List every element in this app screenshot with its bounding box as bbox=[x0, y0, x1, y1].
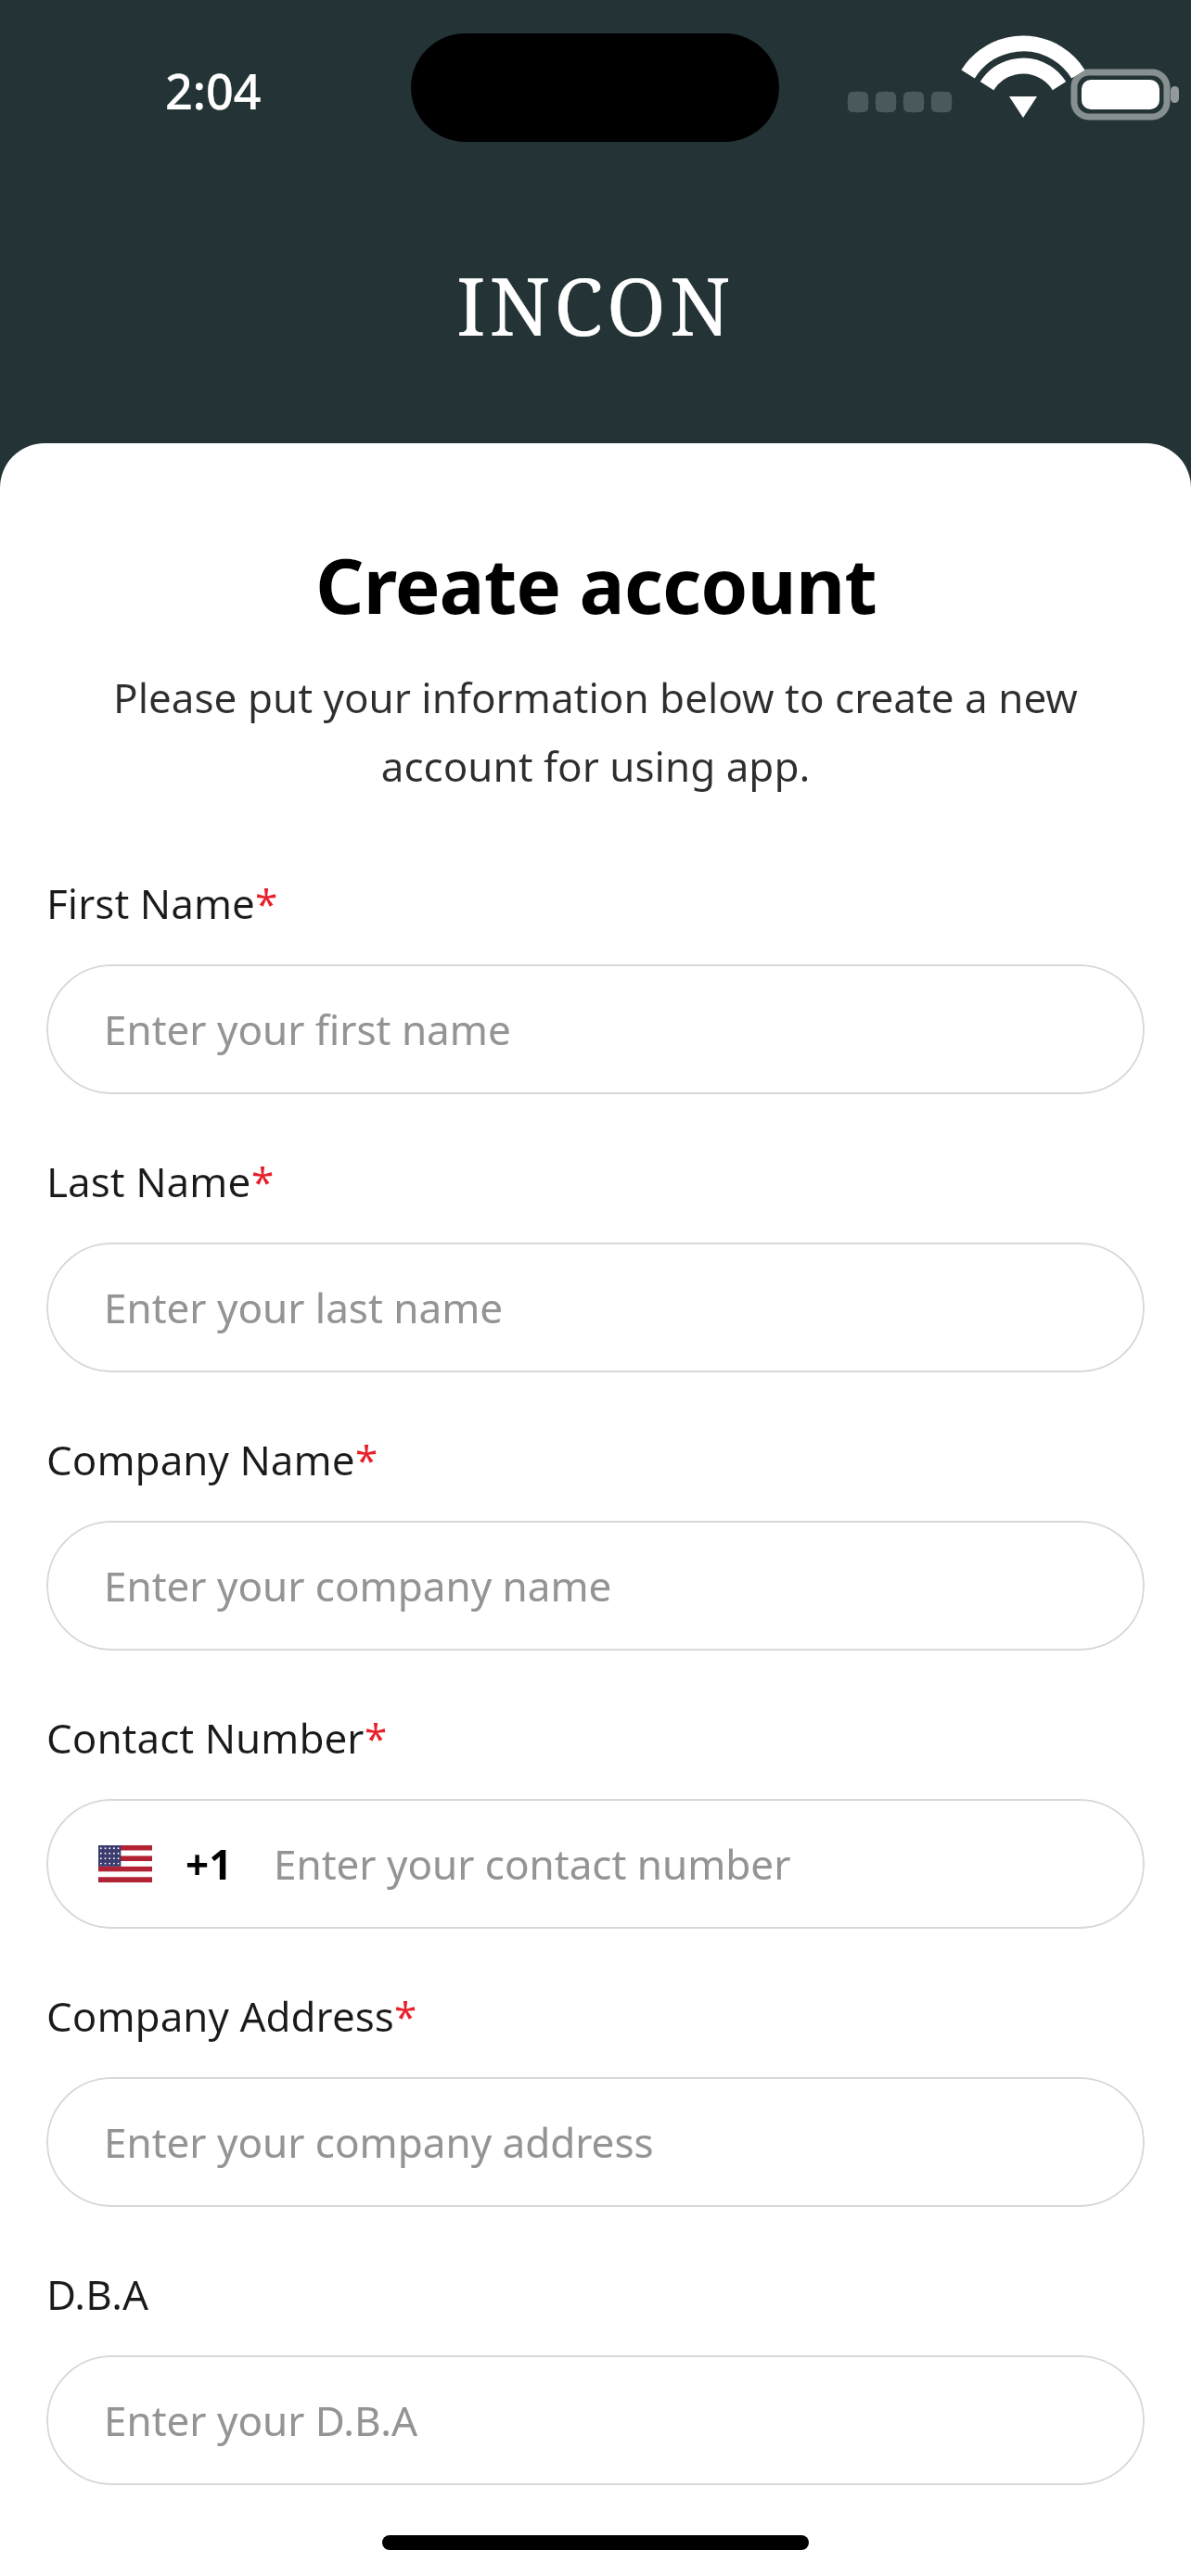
staticText: Enter your contact number bbox=[274, 1836, 791, 1892]
staticText: First Name bbox=[46, 875, 255, 931]
staticText: Enter your last name bbox=[104, 1280, 504, 1335]
staticText: Contact Number bbox=[46, 1710, 365, 1766]
staticText: D.B.A bbox=[46, 2266, 149, 2322]
staticText: Please put your information below to cre… bbox=[85, 670, 1106, 794]
staticText: * bbox=[251, 1154, 275, 1209]
staticText: Enter your company name bbox=[104, 1558, 612, 1613]
staticText: Enter your first name bbox=[104, 1001, 511, 1057]
staticText: * bbox=[394, 1988, 417, 2044]
button[interactable]: Enter your first name bbox=[46, 964, 1145, 1094]
other: United States bbox=[98, 1845, 152, 1882]
button[interactable]: Enter your D.B.A bbox=[46, 2355, 1145, 2485]
staticText: * bbox=[255, 875, 278, 931]
staticText: +1 bbox=[186, 1836, 233, 1892]
button[interactable]: United States bbox=[46, 1799, 1145, 1929]
staticText: * bbox=[355, 1432, 378, 1487]
staticText: 2:04 bbox=[165, 57, 262, 123]
staticText: Create account bbox=[315, 532, 877, 636]
button[interactable]: Enter your last name bbox=[46, 1243, 1145, 1372]
staticText: Company Address bbox=[46, 1988, 394, 2044]
staticText: Enter your company address bbox=[104, 2114, 654, 2170]
staticText: Company Name bbox=[46, 1432, 355, 1487]
staticText: INCON bbox=[456, 250, 735, 359]
button[interactable]: Enter your company address bbox=[46, 2077, 1145, 2207]
staticText: Last Name bbox=[46, 1154, 251, 1209]
button[interactable]: Enter your company name bbox=[46, 1521, 1145, 1651]
staticText: Enter your D.B.A bbox=[104, 2392, 418, 2448]
staticText: * bbox=[365, 1710, 388, 1766]
